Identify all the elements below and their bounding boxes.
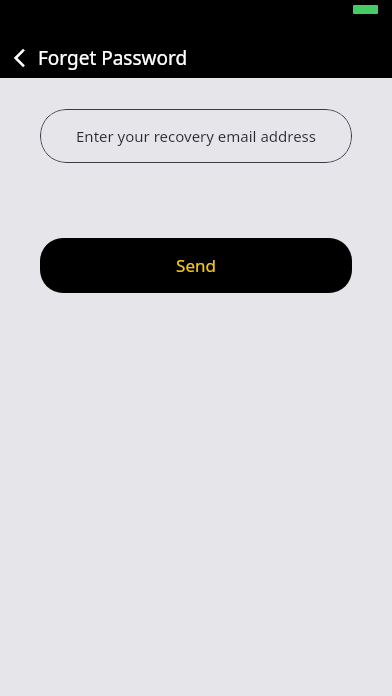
staticText: Enter your recovery email address <box>76 126 316 146</box>
button[interactable]: Send <box>40 238 352 293</box>
staticText: Forget Password <box>38 45 188 71</box>
staticText: Send <box>176 254 216 277</box>
button[interactable]: Enter your recovery email address <box>40 109 352 163</box>
button[interactable]: Back <box>2 40 38 76</box>
